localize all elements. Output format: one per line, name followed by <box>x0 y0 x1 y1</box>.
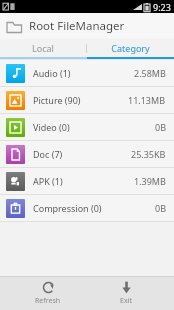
staticText: 2.58MB <box>134 67 166 79</box>
staticText: Doc (7) <box>33 148 63 160</box>
staticText: Audio (1) <box>33 67 71 79</box>
staticText: 11.13MB <box>128 94 166 106</box>
staticText: Picture (90) <box>33 94 81 106</box>
button[interactable]: Local <box>0 39 86 57</box>
staticText: Compression (0) <box>33 202 102 214</box>
button[interactable]: Video (0) <box>0 114 174 140</box>
staticText: Exit <box>120 296 132 306</box>
button[interactable]: Compression (0) <box>0 195 174 221</box>
button[interactable]: Doc (7) <box>0 141 174 167</box>
staticText: Root FileManager <box>29 18 125 34</box>
staticText: 25.35KB <box>131 148 166 160</box>
button[interactable]: Picture (90) <box>0 87 174 113</box>
button[interactable]: Audio (1) <box>0 60 174 86</box>
staticText: 0B <box>155 202 166 214</box>
button[interactable]: APK (1) <box>0 168 174 194</box>
staticText: Category <box>111 42 150 54</box>
button[interactable]: Exit <box>96 276 156 310</box>
button[interactable]: Category <box>87 39 174 57</box>
staticText: Refresh <box>35 296 61 306</box>
staticText: Video (0) <box>33 121 70 133</box>
button[interactable]: Refresh <box>18 276 78 310</box>
staticText: 1.39MB <box>134 175 166 187</box>
staticText: 9:23 <box>153 1 171 13</box>
staticText: 0B <box>155 121 166 133</box>
staticText: Local <box>32 42 54 54</box>
staticText: APK (1) <box>33 175 63 187</box>
